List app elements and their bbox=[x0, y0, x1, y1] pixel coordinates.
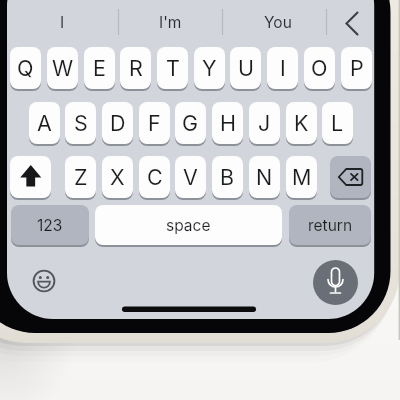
button[interactable]: A bbox=[29, 102, 60, 144]
button[interactable]: J bbox=[249, 102, 280, 144]
button[interactable] bbox=[10, 156, 51, 198]
staticText: K bbox=[294, 110, 309, 136]
button[interactable] bbox=[313, 260, 358, 305]
staticText: A bbox=[37, 110, 52, 136]
button[interactable]: 123 bbox=[11, 205, 89, 245]
button[interactable]: N bbox=[249, 156, 280, 198]
button[interactable]: You bbox=[238, 2, 318, 42]
button[interactable]: W bbox=[47, 47, 78, 89]
staticText: space bbox=[166, 216, 211, 235]
button[interactable] bbox=[332, 2, 372, 42]
staticText: D bbox=[110, 110, 126, 136]
staticText: Z bbox=[74, 164, 88, 190]
staticText: B bbox=[220, 164, 235, 190]
button[interactable]: I'm bbox=[130, 2, 210, 42]
button[interactable]: B bbox=[212, 156, 243, 198]
button[interactable]: E bbox=[84, 47, 115, 89]
staticText: H bbox=[220, 110, 236, 136]
staticText: O bbox=[311, 55, 328, 81]
staticText: S bbox=[74, 110, 88, 136]
button[interactable]: S bbox=[65, 102, 96, 144]
staticText: F bbox=[148, 110, 161, 136]
button[interactable]: I bbox=[267, 47, 298, 89]
button[interactable] bbox=[32, 269, 56, 293]
staticText: I bbox=[280, 55, 286, 81]
button[interactable]: R bbox=[120, 47, 151, 89]
button[interactable]: K bbox=[286, 102, 317, 144]
button[interactable]: space bbox=[95, 205, 282, 245]
button[interactable]: C bbox=[139, 156, 170, 198]
staticText: N bbox=[256, 164, 273, 190]
button[interactable]: return bbox=[289, 205, 371, 245]
button[interactable]: Y bbox=[194, 47, 225, 89]
button[interactable]: I bbox=[22, 2, 102, 42]
button[interactable]: U bbox=[230, 47, 261, 89]
staticText: U bbox=[238, 55, 254, 81]
button[interactable]: H bbox=[212, 102, 243, 144]
staticText: E bbox=[93, 55, 106, 81]
button[interactable]: L bbox=[322, 102, 353, 144]
staticText: L bbox=[331, 110, 344, 136]
button[interactable]: Z bbox=[65, 156, 96, 198]
staticText: 123 bbox=[37, 216, 63, 235]
button[interactable]: X bbox=[102, 156, 133, 198]
staticText: You bbox=[264, 13, 292, 32]
staticText: J bbox=[258, 110, 271, 136]
button[interactable]: Q bbox=[10, 47, 41, 89]
staticText: I bbox=[60, 13, 65, 32]
staticText: G bbox=[182, 110, 199, 136]
button[interactable]: F bbox=[139, 102, 170, 144]
staticText: Y bbox=[202, 55, 217, 81]
staticText: C bbox=[147, 164, 163, 190]
button[interactable] bbox=[330, 156, 371, 198]
button[interactable]: D bbox=[102, 102, 133, 144]
button[interactable]: T bbox=[157, 47, 188, 89]
button[interactable]: M bbox=[286, 156, 317, 198]
button[interactable]: O bbox=[304, 47, 335, 89]
staticText: R bbox=[129, 55, 143, 81]
staticText: P bbox=[350, 55, 364, 81]
staticText: W bbox=[52, 55, 74, 81]
staticText: V bbox=[183, 164, 198, 190]
staticText: Q bbox=[17, 55, 34, 81]
staticText: T bbox=[166, 55, 180, 81]
button[interactable]: G bbox=[175, 102, 206, 144]
button[interactable]: V bbox=[175, 156, 206, 198]
staticText: return bbox=[308, 216, 353, 235]
button[interactable]: P bbox=[341, 47, 372, 89]
staticText: X bbox=[110, 164, 125, 190]
staticText: M bbox=[292, 164, 312, 190]
staticText: I'm bbox=[159, 13, 182, 32]
